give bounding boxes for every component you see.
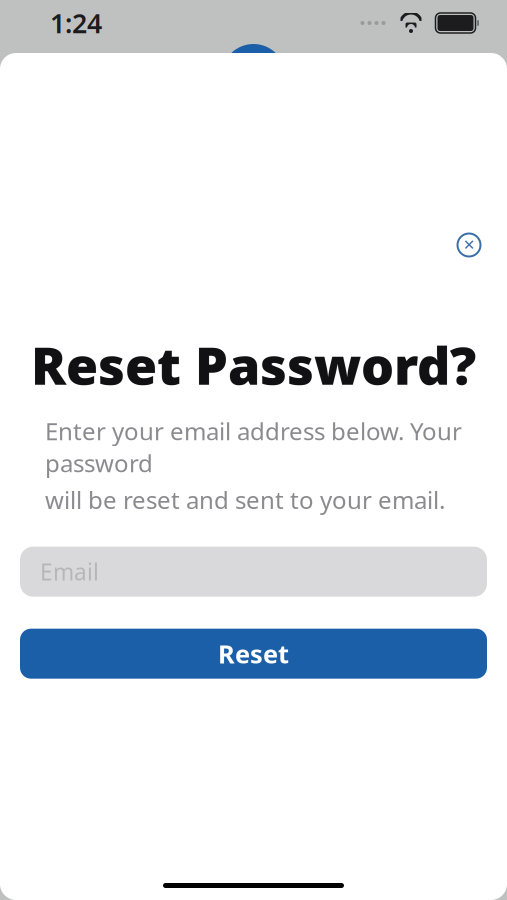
button[interactable]: Reset: [20, 629, 487, 679]
staticText: will be reset and sent to your email.: [45, 484, 445, 516]
button[interactable]: Close: [447, 223, 491, 267]
staticText: Email: [40, 557, 99, 587]
staticText: Enter your email address below. Your pas…: [45, 415, 462, 479]
staticText: Reset: [218, 637, 289, 670]
staticText: Reset Password?: [31, 330, 476, 399]
staticText: 1:24: [50, 5, 102, 41]
button[interactable]: Email: [20, 547, 487, 597]
staticText: ✕: [463, 237, 475, 253]
